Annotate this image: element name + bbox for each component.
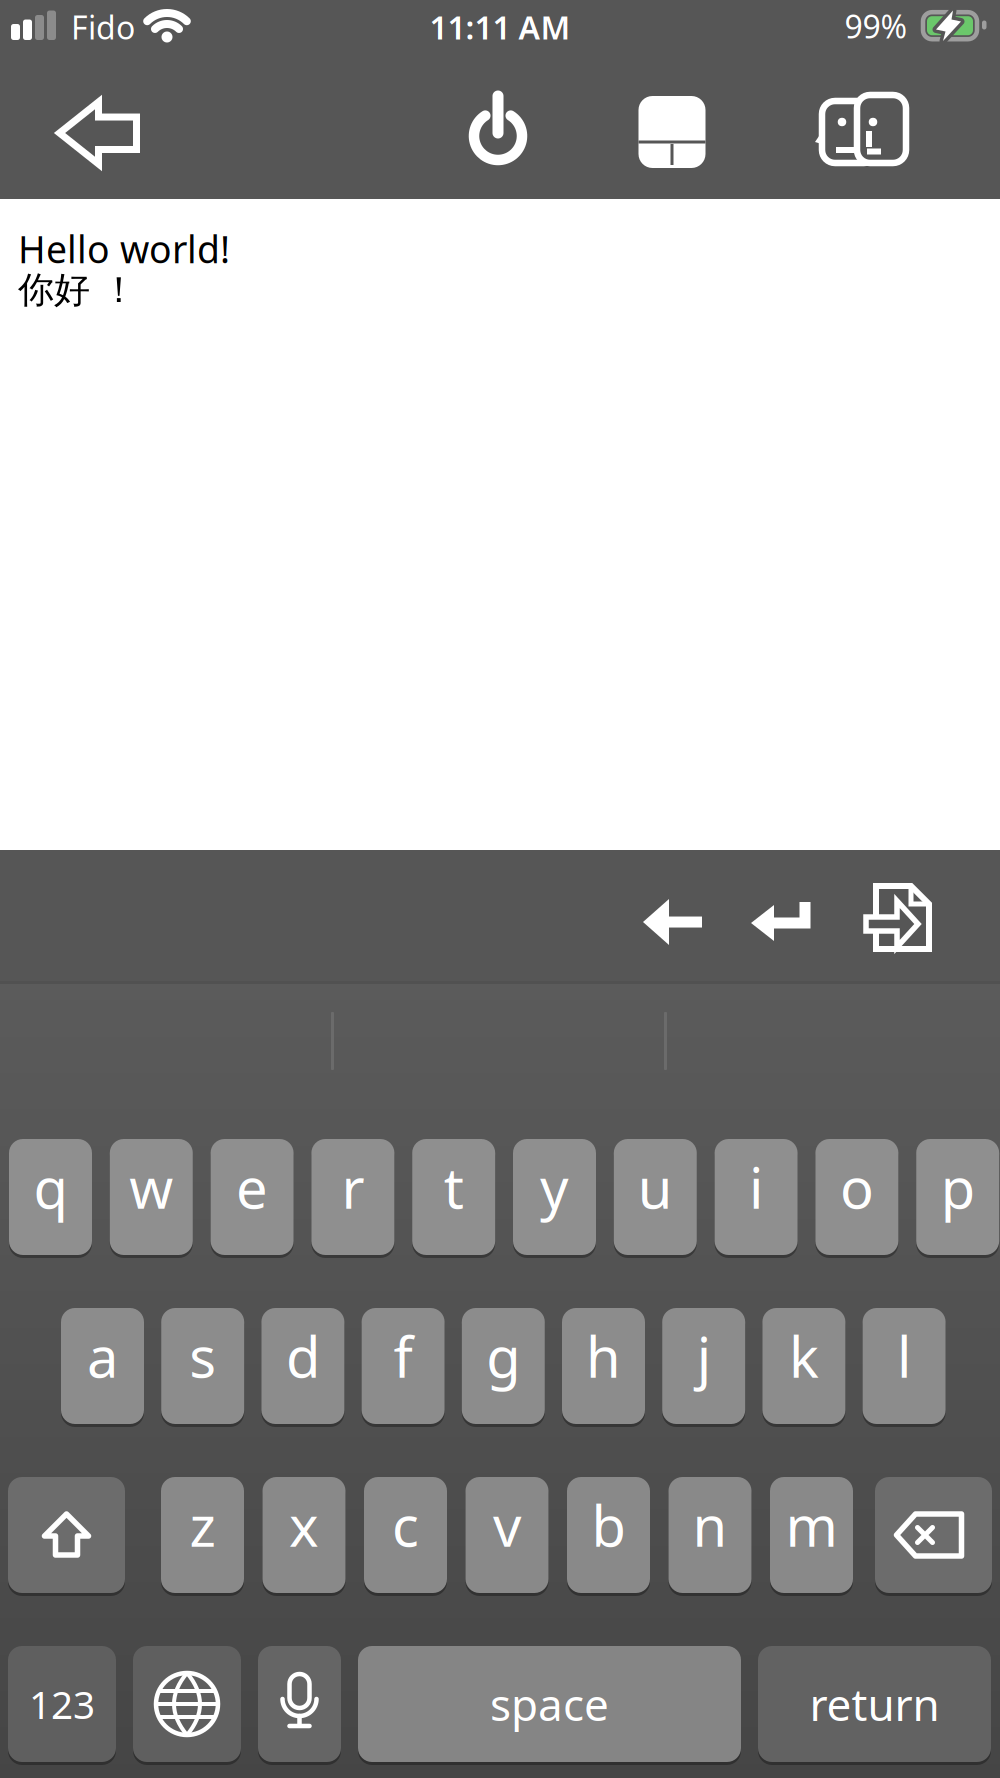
button[interactable]: Faces	[809, 85, 919, 175]
button[interactable]: l	[863, 1308, 946, 1424]
button[interactable]: k	[762, 1308, 845, 1424]
button[interactable]: x	[262, 1477, 345, 1593]
button[interactable]: f	[362, 1308, 445, 1424]
staticText: e	[236, 1150, 268, 1224]
button[interactable]: Power	[448, 81, 548, 181]
button[interactable]: Next keyboard	[133, 1646, 241, 1762]
staticText: 11:11 AM	[429, 6, 570, 48]
button[interactable]: return	[758, 1646, 991, 1762]
button[interactable]: 123	[8, 1646, 116, 1762]
staticText: b	[591, 1488, 625, 1562]
staticText: c	[392, 1488, 419, 1562]
staticText: z	[189, 1488, 215, 1562]
staticText: Hello world!	[18, 224, 230, 274]
staticText: y	[540, 1150, 569, 1224]
button[interactable]: m	[770, 1477, 853, 1593]
button[interactable]: b	[567, 1477, 650, 1593]
staticText: j	[697, 1319, 711, 1393]
button[interactable]: w	[110, 1139, 193, 1255]
staticText: t	[444, 1150, 464, 1224]
button[interactable]: Move left	[622, 872, 722, 972]
button[interactable]: Trackpad	[622, 82, 722, 182]
staticText: l	[897, 1319, 911, 1393]
staticText: g	[486, 1319, 520, 1393]
staticText: a	[87, 1319, 118, 1393]
staticText: v	[493, 1488, 521, 1562]
staticText: return	[809, 1675, 939, 1733]
button[interactable]: j	[662, 1308, 745, 1424]
button[interactable]: p	[916, 1139, 999, 1255]
staticText: 你好 ！	[18, 268, 137, 312]
staticText: space	[490, 1675, 609, 1733]
staticText: w	[129, 1150, 173, 1224]
button[interactable]: z	[161, 1477, 244, 1593]
staticText: n	[692, 1488, 727, 1562]
button[interactable]: o	[815, 1139, 898, 1255]
staticText: x	[289, 1488, 319, 1562]
button[interactable]: Back	[38, 83, 158, 183]
staticText: o	[840, 1150, 874, 1224]
staticText: 123	[29, 1678, 95, 1730]
button[interactable]: v	[465, 1477, 548, 1593]
button[interactable]: g	[462, 1308, 545, 1424]
button[interactable]: Send	[848, 868, 948, 968]
button[interactable]: u	[614, 1139, 697, 1255]
button[interactable]: space	[358, 1646, 741, 1762]
button[interactable]: Dictate	[258, 1646, 341, 1762]
button[interactable]: t	[412, 1139, 495, 1255]
button[interactable]: c	[364, 1477, 447, 1593]
button[interactable]: e	[211, 1139, 294, 1255]
button[interactable]: h	[562, 1308, 645, 1424]
button[interactable]: Delete	[875, 1477, 992, 1593]
staticText: 99%	[844, 5, 907, 47]
button[interactable]: n	[668, 1477, 751, 1593]
button[interactable]: Shift	[8, 1477, 125, 1593]
staticText: f	[394, 1319, 413, 1393]
staticText: p	[941, 1150, 975, 1224]
staticText: m	[785, 1488, 837, 1562]
button[interactable]: q	[9, 1139, 92, 1255]
button[interactable]: y	[513, 1139, 596, 1255]
button[interactable]: Return	[730, 872, 830, 972]
button[interactable]: s	[161, 1308, 244, 1424]
staticText: d	[286, 1319, 320, 1393]
button[interactable]: d	[261, 1308, 344, 1424]
staticText: s	[189, 1319, 216, 1393]
staticText: i	[749, 1150, 763, 1224]
staticText: Fido	[71, 6, 135, 48]
button[interactable]: i	[715, 1139, 798, 1255]
button[interactable]: a	[61, 1308, 144, 1424]
staticText: u	[638, 1150, 673, 1224]
staticText: r	[341, 1150, 364, 1224]
staticText: q	[33, 1150, 67, 1224]
staticText: k	[789, 1319, 819, 1393]
button[interactable]: r	[311, 1139, 394, 1255]
staticText: h	[586, 1319, 621, 1393]
